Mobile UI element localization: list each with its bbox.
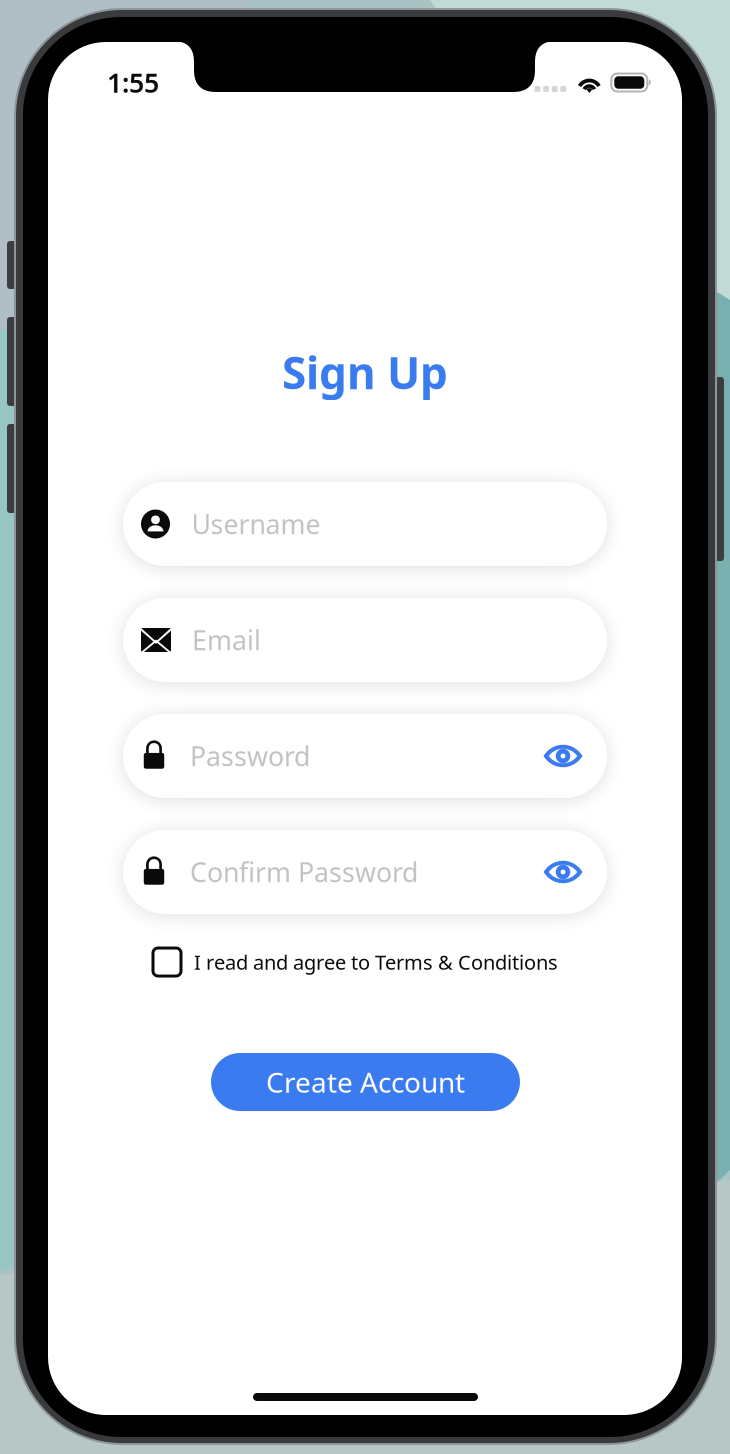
- staticText: Confirm Password: [190, 854, 418, 890]
- staticText: Create Account: [266, 1063, 465, 1101]
- staticText: Password: [190, 738, 310, 774]
- staticText: Sign Up: [282, 343, 448, 401]
- staticText: Email: [192, 622, 261, 658]
- staticText: I read and agree to Terms & Conditions: [194, 949, 558, 975]
- button[interactable]: Confirm Password: [123, 830, 607, 914]
- button[interactable]: Username: [123, 482, 607, 566]
- button[interactable]: Create Account: [211, 1053, 520, 1111]
- button[interactable]: Password: [123, 714, 607, 798]
- staticText: 1:55: [107, 65, 159, 100]
- button[interactable]: I read and agree to Terms & Conditions: [153, 945, 583, 979]
- staticText: Username: [191, 506, 320, 542]
- button[interactable]: Email: [123, 598, 607, 682]
